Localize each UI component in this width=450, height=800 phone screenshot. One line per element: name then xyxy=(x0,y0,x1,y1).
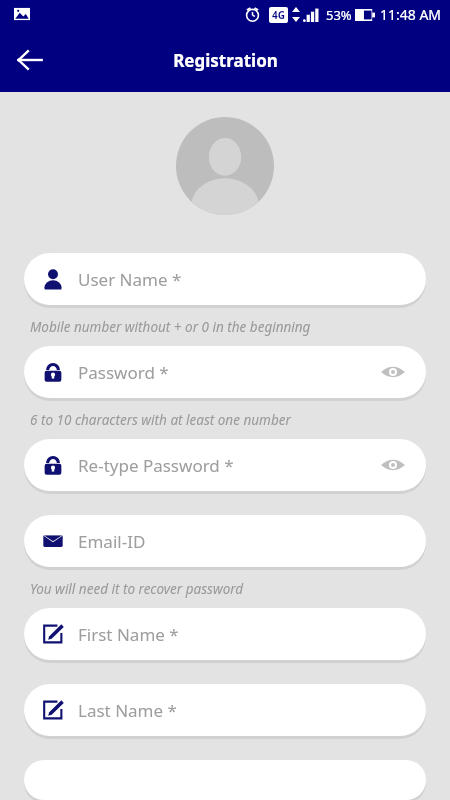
button[interactable]: Show password xyxy=(378,357,408,387)
staticText: 53% xyxy=(326,6,352,24)
button[interactable]: Re-type Password * xyxy=(24,439,426,491)
staticText: 6 to 10 characters with at least one num… xyxy=(30,411,291,429)
button[interactable]: Password * xyxy=(24,346,426,398)
staticText: Last Name * xyxy=(78,699,177,722)
staticText: User Name * xyxy=(78,268,182,291)
button[interactable]: Back xyxy=(6,36,54,84)
button[interactable] xyxy=(24,760,426,800)
staticText: Mobile number without + or 0 in the begi… xyxy=(30,318,311,336)
staticText: Registration xyxy=(173,49,278,72)
button[interactable]: Last Name * xyxy=(24,684,426,736)
staticText: First Name * xyxy=(78,623,179,646)
button[interactable]: First Name * xyxy=(24,608,426,660)
staticText: Email-ID xyxy=(78,530,146,553)
staticText: Password * xyxy=(78,361,169,384)
staticText: You will need it to recover password xyxy=(30,580,244,598)
staticText: 11:48 AM xyxy=(380,5,442,24)
staticText: Re-type Password * xyxy=(78,454,234,477)
button[interactable]: Show password xyxy=(378,450,408,480)
button[interactable]: Email-ID xyxy=(24,515,426,567)
button[interactable]: User Name * xyxy=(24,253,426,305)
button[interactable]: Profile photo xyxy=(176,117,274,215)
staticText: 4G xyxy=(272,8,285,22)
